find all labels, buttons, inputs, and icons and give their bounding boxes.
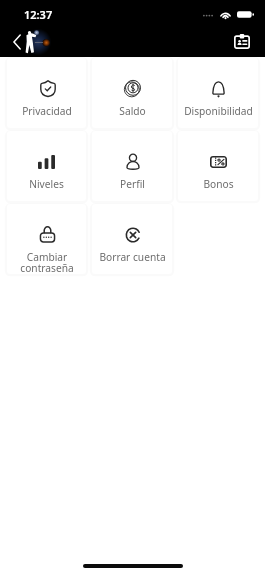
button[interactable]: ID card [231, 30, 253, 52]
staticText: Perfil [120, 177, 145, 191]
staticText: Borrar cuenta [99, 250, 166, 264]
button[interactable]: Niveles [7, 131, 86, 201]
staticText: Privacidad [22, 104, 72, 118]
staticText: Saldo [119, 104, 146, 118]
button[interactable]: Disponibilidad [178, 58, 258, 128]
button[interactable]: Borrar cuenta [92, 204, 172, 274]
button[interactable]: Privacidad [7, 58, 86, 128]
staticText: Niveles [29, 177, 64, 191]
staticText: Cambiar contraseña [20, 250, 74, 274]
staticText: Bonos [203, 177, 234, 191]
button[interactable]: Back [6, 31, 28, 53]
staticText: Disponibilidad [184, 104, 253, 118]
button[interactable]: Cambiar contraseña [7, 204, 86, 274]
button[interactable]: Saldo [92, 58, 172, 128]
button[interactable]: Perfil [92, 131, 172, 201]
staticText: 12:37 [24, 7, 53, 22]
button[interactable]: Bonos [178, 131, 258, 201]
